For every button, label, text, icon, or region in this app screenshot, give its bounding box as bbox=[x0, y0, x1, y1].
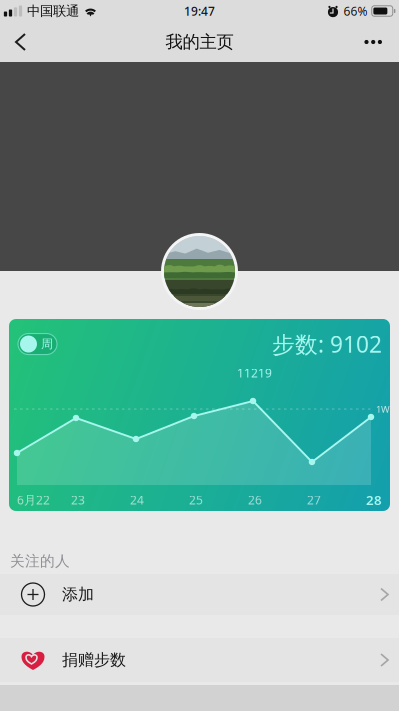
button[interactable]: 添加 bbox=[0, 574, 399, 615]
staticText: 24 bbox=[130, 492, 144, 508]
staticText: 26 bbox=[248, 492, 262, 508]
staticText: 添加 bbox=[62, 585, 94, 604]
staticText: 23 bbox=[71, 492, 85, 508]
staticText: 关注的人 bbox=[10, 552, 70, 570]
staticText: 步数: 9102 bbox=[272, 329, 382, 359]
staticText: 1W bbox=[376, 403, 390, 415]
staticText: 66% bbox=[343, 3, 367, 19]
button[interactable]: More options bbox=[348, 24, 399, 60]
staticText: 25 bbox=[189, 492, 203, 508]
staticText: 27 bbox=[307, 492, 321, 508]
staticText: 28 bbox=[366, 491, 382, 509]
staticText: 周 bbox=[41, 337, 53, 351]
staticText: 中国联通 bbox=[27, 3, 79, 19]
staticText: 6月22 bbox=[17, 492, 50, 508]
button[interactable]: 捐赠步数 bbox=[0, 638, 399, 682]
button[interactable]: Back bbox=[0, 22, 41, 62]
staticText: 19:47 bbox=[184, 3, 215, 19]
staticText: 捐赠步数 bbox=[62, 650, 126, 670]
staticText: 11219 bbox=[237, 365, 272, 381]
staticText: 我的主页 bbox=[165, 31, 233, 53]
button[interactable]: Week range bbox=[18, 334, 57, 355]
